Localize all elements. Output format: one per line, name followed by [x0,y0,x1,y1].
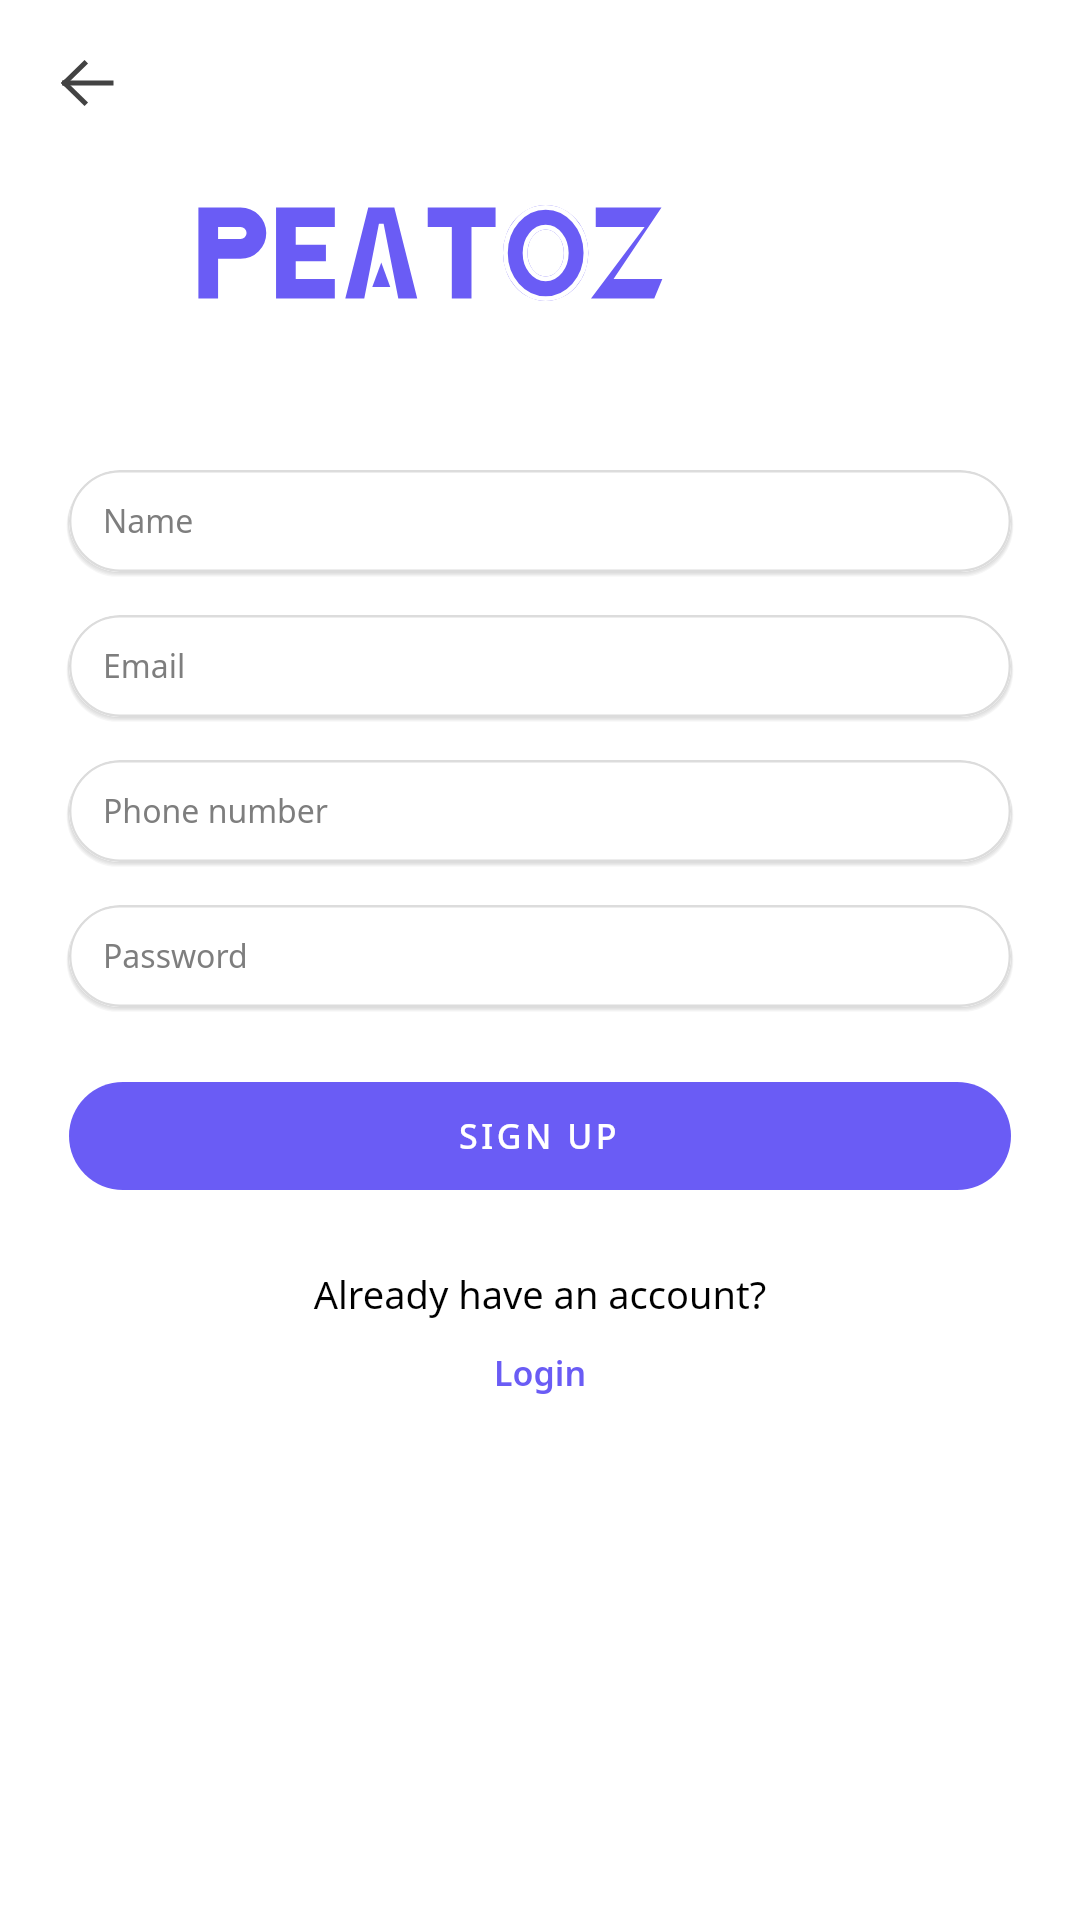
button[interactable]: SIGN UP [69,1082,1011,1190]
button[interactable]: Login [474,1342,607,1404]
button[interactable]: Back [46,42,128,124]
button[interactable]: Name [69,470,1011,572]
staticText: Login [494,1350,587,1396]
button[interactable]: Password [69,905,1011,1007]
staticText: Name [103,499,194,543]
staticText: SIGN UP [459,1113,621,1159]
button[interactable]: Phone number [69,760,1011,862]
staticText: Phone number [103,789,329,833]
staticText: Password [103,934,248,978]
staticText: Already have an account? [69,1268,1011,1320]
staticText: Email [103,644,186,688]
button[interactable]: Email [69,615,1011,717]
